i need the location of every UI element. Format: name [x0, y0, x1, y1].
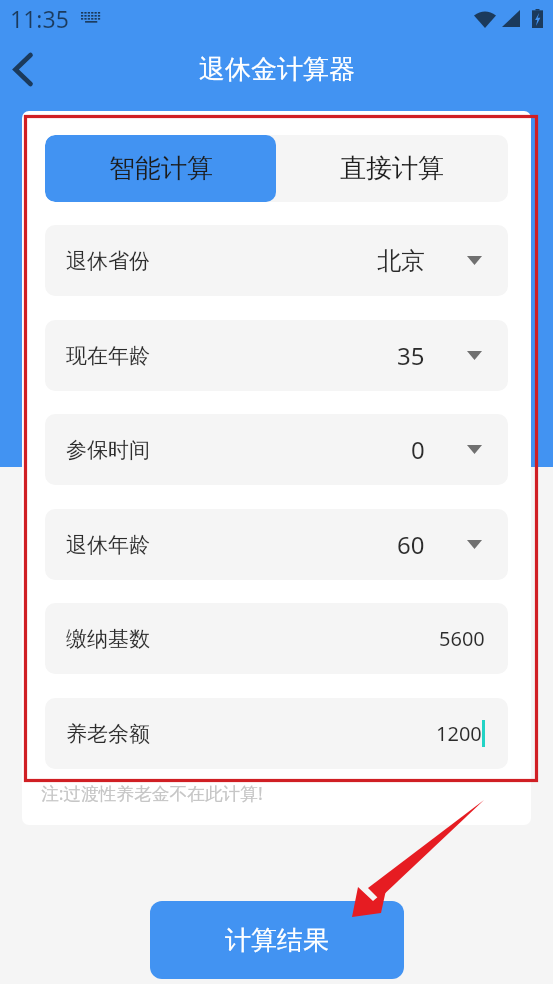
staticText: 退休年龄 — [66, 532, 150, 558]
staticText: 直接计算 — [340, 152, 444, 185]
staticText: 注:过渡性养老金不在此计算! — [41, 781, 263, 805]
button[interactable]: 现在年龄 — [45, 320, 508, 391]
staticText: 0 — [411, 433, 425, 466]
staticText: 养老余额 — [66, 721, 150, 747]
staticText: 5600 — [439, 625, 485, 652]
staticText: 现在年龄 — [66, 343, 150, 369]
button[interactable]: Back — [0, 40, 44, 96]
button[interactable]: 缴纳基数 — [45, 603, 508, 674]
button[interactable]: 养老余额 — [45, 698, 508, 769]
staticText: 11:35 — [10, 3, 69, 34]
staticText: 参保时间 — [66, 437, 150, 463]
button[interactable]: 计算结果 — [150, 901, 404, 979]
staticText: 1200 — [436, 720, 482, 747]
staticText: 智能计算 — [109, 152, 213, 185]
staticText: 缴纳基数 — [66, 626, 150, 652]
button[interactable]: 参保时间 — [45, 414, 508, 485]
button[interactable]: 退休省份 — [45, 225, 508, 296]
staticText: 退休省份 — [66, 248, 150, 274]
button[interactable]: 直接计算 — [276, 135, 508, 202]
button[interactable]: 退休年龄 — [45, 509, 508, 580]
staticText: 退休金计算器 — [199, 53, 355, 86]
staticText: 60 — [397, 528, 425, 561]
button[interactable]: 智能计算 — [45, 135, 276, 202]
staticText: 计算结果 — [225, 924, 329, 957]
staticText: 35 — [397, 339, 425, 372]
staticText: 北京 — [377, 246, 425, 276]
